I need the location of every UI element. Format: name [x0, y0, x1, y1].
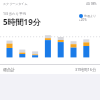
staticText: 37時間16分: [75, 67, 97, 72]
staticText: 4G 98%: [86, 2, 97, 6]
staticText: 1日当たり平均: [3, 11, 27, 16]
staticText: 5時間19分: [3, 16, 41, 27]
staticText: +20%: [79, 18, 87, 22]
staticText: 先週より: [84, 14, 97, 18]
staticText: スクリーンタイム: [3, 2, 28, 6]
staticText: 週合計: [3, 67, 15, 72]
